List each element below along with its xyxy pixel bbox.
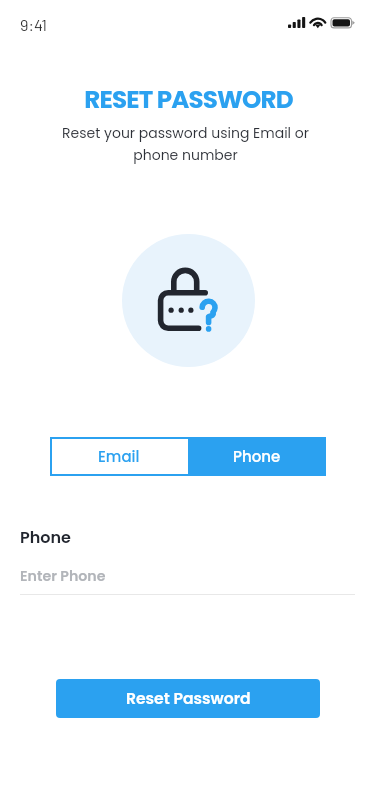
- staticText: 9:41: [20, 15, 48, 34]
- staticText: Enter Phone: [20, 566, 106, 586]
- staticText: Reset your password using Email or phone…: [22, 123, 349, 165]
- button[interactable]: Email: [50, 437, 188, 476]
- staticText: Email: [98, 446, 140, 467]
- staticText: Phone: [233, 446, 281, 467]
- button[interactable]: Reset Password: [56, 679, 320, 718]
- staticText: Phone: [20, 526, 71, 548]
- other: Forgot password: [155, 267, 221, 333]
- button[interactable]: Phone: [188, 437, 326, 476]
- other: Status icons: [287, 15, 357, 29]
- staticText: Reset Password: [126, 688, 251, 710]
- button[interactable]: Enter Phone: [20, 560, 355, 595]
- staticText: RESET PASSWORD: [1, 82, 375, 116]
